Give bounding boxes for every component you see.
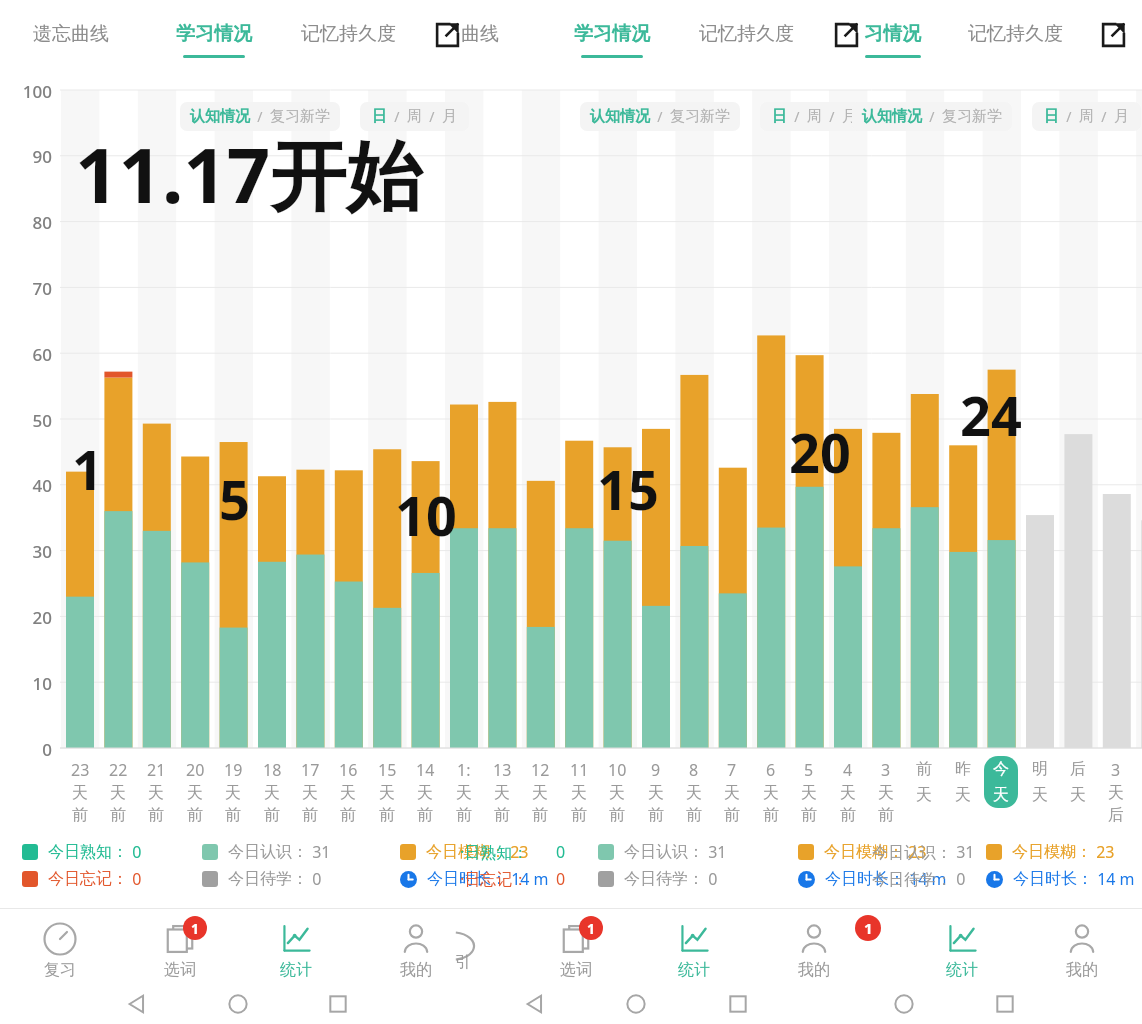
staticText: 前 xyxy=(72,805,88,825)
button[interactable]: Back xyxy=(518,988,550,1020)
button[interactable]: 周 xyxy=(1079,107,1094,126)
button[interactable]: 今日模糊： xyxy=(986,841,1115,863)
button[interactable]: 今日忘记： xyxy=(22,868,142,890)
button[interactable]: 21 xyxy=(139,756,173,828)
button[interactable]: 20 xyxy=(178,756,212,828)
button[interactable]: 曲线 xyxy=(455,18,505,50)
button[interactable]: 统计 xyxy=(922,916,1002,978)
button[interactable]: 10 xyxy=(600,756,634,828)
button[interactable]: Open in new window xyxy=(833,22,859,48)
button[interactable]: 22 xyxy=(101,756,135,828)
button[interactable]: 今日认识： xyxy=(202,841,331,863)
button[interactable]: 复习 xyxy=(20,916,100,978)
button[interactable]: 学习情况 xyxy=(170,18,258,62)
button[interactable]: 13 xyxy=(485,756,519,828)
staticText: 23 xyxy=(904,841,927,863)
button[interactable]: 我的 xyxy=(376,916,456,978)
staticText: 5 xyxy=(804,759,814,781)
staticText: 明 xyxy=(1032,759,1048,779)
button[interactable]: 今日熟知： xyxy=(22,841,142,863)
button[interactable]: 后 xyxy=(1061,756,1095,808)
button[interactable]: 3 xyxy=(1099,756,1133,828)
button[interactable]: 认知情况 xyxy=(590,107,650,126)
staticText: 前 xyxy=(340,805,356,825)
staticText: 今日待学： xyxy=(624,869,704,889)
staticText: 0 xyxy=(704,868,718,890)
button[interactable]: 记忆持久度 xyxy=(962,18,1069,50)
button[interactable]: 明 xyxy=(1023,756,1057,808)
button[interactable]: 18 xyxy=(255,756,289,828)
button[interactable]: 6 xyxy=(754,756,788,828)
button[interactable]: 我的 xyxy=(774,916,854,978)
button[interactable]: 日 xyxy=(772,107,787,126)
button[interactable]: 日 xyxy=(372,107,387,126)
button[interactable]: 统计 xyxy=(654,916,734,978)
button[interactable]: 16 xyxy=(331,756,365,828)
button[interactable]: 遗忘曲线 xyxy=(27,18,115,50)
button[interactable]: 1 xyxy=(140,916,220,978)
button[interactable]: 5 xyxy=(792,756,826,828)
button[interactable]: 4 xyxy=(831,756,865,828)
staticText: 记忆持久度 xyxy=(968,22,1063,46)
button[interactable]: 我的 xyxy=(1042,916,1122,978)
button[interactable]: 复习新学 xyxy=(942,107,1002,126)
button[interactable]: 记忆持久度 xyxy=(295,18,402,50)
button[interactable]: 今日模糊： xyxy=(400,841,529,863)
button[interactable]: 今日认识： xyxy=(598,841,727,863)
button[interactable]: 认知情况 xyxy=(190,107,250,126)
staticText: 前 xyxy=(148,805,164,825)
button[interactable]: Home xyxy=(222,988,254,1020)
button[interactable]: 月 xyxy=(842,107,857,126)
button[interactable]: 17 xyxy=(293,756,327,828)
button[interactable]: Recent apps xyxy=(989,988,1021,1020)
button[interactable]: 月 xyxy=(1114,107,1129,126)
button[interactable]: 习情况 xyxy=(860,18,925,62)
button[interactable]: 1 xyxy=(536,916,616,978)
button[interactable]: 昨 xyxy=(946,756,980,808)
button[interactable]: 8 xyxy=(677,756,711,828)
button[interactable]: 复习新学 xyxy=(670,107,730,126)
staticText: 选词 xyxy=(560,960,592,978)
button[interactable]: 今日待学： xyxy=(202,868,322,890)
button[interactable]: 今 xyxy=(984,756,1018,808)
button[interactable]: 今日时长： xyxy=(986,868,1135,890)
button[interactable]: 3 xyxy=(869,756,903,828)
button[interactable]: Recent apps xyxy=(722,988,754,1020)
button[interactable]: 日 xyxy=(1044,107,1059,126)
staticText: 前 xyxy=(532,805,548,825)
button[interactable]: 今日模糊： xyxy=(798,841,927,863)
button[interactable]: Back xyxy=(120,988,152,1020)
staticText: 10 xyxy=(608,759,627,781)
button[interactable]: 复习新学 xyxy=(270,107,330,126)
button[interactable]: 1: xyxy=(447,756,481,828)
button[interactable]: 周 xyxy=(407,107,422,126)
staticText: 前 xyxy=(571,805,587,825)
button[interactable]: 23 xyxy=(63,756,97,828)
button[interactable]: 记忆持久度 xyxy=(693,18,800,50)
button[interactable]: 12 xyxy=(523,756,557,828)
staticText: 今日模糊： xyxy=(426,842,506,862)
button[interactable]: 前 xyxy=(907,756,941,808)
button[interactable]: 9 xyxy=(639,756,673,828)
button[interactable]: 今日时长： xyxy=(400,868,549,890)
button[interactable]: 今日时长： xyxy=(798,868,947,890)
staticText: 昨 xyxy=(955,759,971,779)
button[interactable]: 今日待学： xyxy=(598,868,718,890)
button[interactable]: 15 xyxy=(370,756,404,828)
button[interactable]: 14 xyxy=(408,756,442,828)
button[interactable]: 月 xyxy=(442,107,457,126)
button[interactable]: 学习情况 xyxy=(568,18,656,62)
button[interactable]: Home xyxy=(888,988,920,1020)
button[interactable]: Open in new window xyxy=(434,22,460,48)
button[interactable]: 周 xyxy=(807,107,822,126)
button[interactable]: 统计 xyxy=(256,916,336,978)
button[interactable]: 11 xyxy=(562,756,596,828)
button[interactable]: Open in new window xyxy=(1100,22,1126,48)
button[interactable]: 认知情况 xyxy=(862,107,922,126)
staticText: 前 xyxy=(648,805,664,825)
button[interactable]: Recent apps xyxy=(322,988,354,1020)
button[interactable]: Home xyxy=(620,988,652,1020)
button[interactable]: 7 xyxy=(715,756,749,828)
button[interactable]: 19 xyxy=(216,756,250,828)
